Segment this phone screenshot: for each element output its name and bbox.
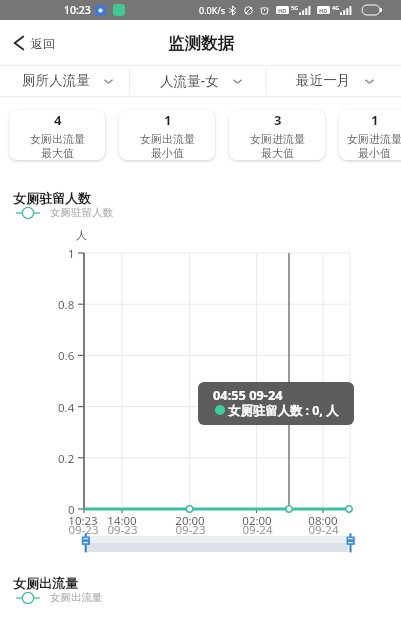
staticText: 0 — [68, 502, 75, 518]
staticText: 最大值 — [41, 146, 74, 160]
staticText: 女厕进流量 — [347, 132, 401, 146]
staticText: 0.2 — [58, 451, 75, 467]
staticText: 女厕驻留人数 — [50, 206, 113, 219]
button[interactable]: 3 — [229, 110, 325, 160]
staticText: 10:23 — [68, 513, 98, 529]
staticText: 监测数据 — [168, 33, 234, 54]
staticText: 人流量-女 — [160, 71, 219, 90]
staticText: 最大值 — [261, 146, 294, 160]
staticText: 厕所人流量 — [22, 72, 90, 89]
staticText: 08:00 — [308, 513, 338, 529]
staticText: 最小值 — [151, 146, 184, 160]
staticText: 5G — [291, 4, 299, 11]
staticText: 女厕出流量 — [50, 591, 103, 604]
staticText: 1 — [164, 111, 172, 129]
staticText: HD — [278, 7, 287, 14]
staticText: 09-23 — [175, 522, 206, 538]
staticText: HD — [319, 7, 328, 14]
staticText: 女厕驻留人数 — [13, 190, 91, 206]
staticText: 09-23 — [68, 522, 99, 538]
staticText: 1 — [371, 111, 379, 129]
staticText: 10:23 — [64, 3, 91, 17]
staticText: 09-24 — [242, 522, 273, 538]
button[interactable]: 最近一月 — [268, 65, 401, 96]
staticText: 0.0K/s — [199, 4, 225, 16]
staticText: 最近一月 — [296, 72, 351, 89]
staticText: 04:55 09-24 — [213, 386, 283, 403]
button[interactable]: Back — [0, 24, 67, 62]
button[interactable]: 人流量-女 — [134, 65, 268, 96]
staticText: 女厕出流量 — [13, 575, 78, 591]
staticText: 1 — [68, 246, 75, 262]
staticText: 女厕驻留人数 : 0, 人 — [228, 402, 339, 419]
staticText: 女厕出流量 — [30, 132, 85, 146]
staticText: 最小值 — [358, 146, 391, 160]
staticText: 人 — [76, 228, 87, 242]
button[interactable]: Time range slider — [0, 0, 401, 620]
staticText: 女厕进流量 — [250, 132, 305, 146]
staticText: 3 — [274, 111, 282, 129]
staticText: 返回 — [31, 36, 55, 51]
staticText: 09-23 — [107, 522, 138, 538]
staticText: 14:00 — [107, 513, 137, 529]
staticText: 0.8 — [58, 297, 75, 313]
staticText: 09-24 — [308, 522, 339, 538]
button[interactable]: 4 — [9, 110, 105, 160]
staticText: 女厕出流量 — [140, 132, 195, 146]
staticText: 0.4 — [58, 400, 75, 416]
staticText: 02:00 — [242, 513, 272, 529]
staticText: 20:00 — [175, 513, 205, 529]
staticText: 4G — [332, 4, 340, 11]
staticText: 0.6 — [58, 348, 75, 364]
button[interactable]: 1 — [119, 110, 215, 160]
other: Back — [13, 34, 25, 52]
staticText: 4 — [54, 111, 62, 129]
button[interactable]: 1 — [339, 110, 401, 160]
button[interactable]: 厕所人流量 — [0, 65, 134, 96]
